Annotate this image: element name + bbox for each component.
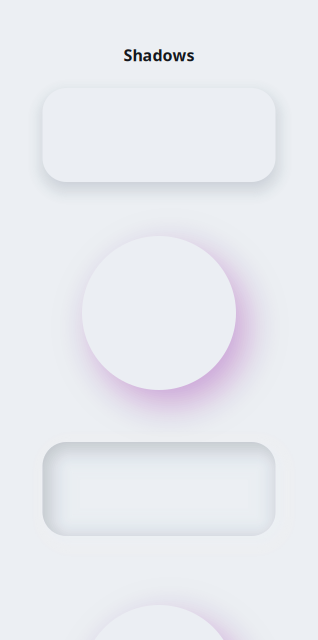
staticText: Shadows bbox=[123, 44, 194, 66]
